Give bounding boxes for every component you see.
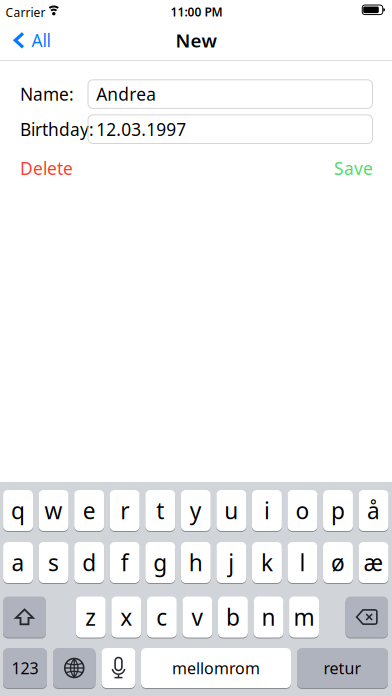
- button[interactable]: q: [3, 489, 33, 531]
- staticText: Delete: [20, 157, 73, 180]
- staticText: Andrea: [96, 83, 156, 106]
- button[interactable]: r: [110, 489, 140, 531]
- button[interactable]: s: [39, 541, 68, 583]
- button[interactable]: d: [74, 541, 104, 583]
- staticText: p: [331, 495, 345, 525]
- button[interactable]: Save: [273, 155, 373, 181]
- button[interactable]: j: [216, 541, 246, 583]
- staticText: h: [189, 547, 203, 577]
- staticText: v: [191, 602, 203, 632]
- button[interactable]: a: [3, 541, 33, 583]
- button[interactable]: f: [110, 541, 140, 583]
- button[interactable]: w: [39, 489, 68, 531]
- button[interactable]: Delete: [345, 596, 388, 638]
- button[interactable]: mellomrom: [141, 647, 291, 688]
- button[interactable]: Delete: [20, 155, 120, 181]
- staticText: m: [293, 602, 314, 632]
- staticText: q: [11, 495, 25, 525]
- staticText: b: [226, 602, 240, 632]
- button[interactable]: k: [252, 541, 282, 583]
- staticText: 11:00 PM: [170, 4, 222, 20]
- button[interactable]: u: [216, 489, 246, 531]
- staticText: 12.03.1997: [96, 118, 186, 141]
- staticText: æ: [364, 547, 384, 577]
- staticText: a: [12, 547, 25, 577]
- button[interactable]: i: [252, 489, 282, 531]
- staticText: z: [85, 602, 96, 632]
- staticText: All: [31, 29, 50, 52]
- staticText: Carrier: [5, 4, 45, 20]
- staticText: k: [261, 547, 273, 577]
- button[interactable]: ø: [323, 541, 353, 583]
- button[interactable]: z: [76, 596, 106, 638]
- staticText: c: [156, 602, 167, 632]
- staticText: ø: [331, 547, 345, 577]
- button[interactable]: h: [181, 541, 211, 583]
- button[interactable]: 123: [3, 647, 47, 688]
- staticText: w: [45, 495, 63, 525]
- staticText: y: [190, 495, 202, 525]
- button[interactable]: v: [182, 596, 212, 638]
- button[interactable]: Back: [13, 25, 50, 55]
- button[interactable]: b: [218, 596, 248, 638]
- staticText: i: [264, 495, 270, 525]
- button[interactable]: l: [287, 541, 317, 583]
- button[interactable]: g: [145, 541, 175, 583]
- staticText: f: [121, 547, 129, 577]
- staticText: retur: [323, 657, 361, 679]
- button[interactable]: x: [111, 596, 141, 638]
- button[interactable]: t: [145, 489, 175, 531]
- button[interactable]: p: [323, 489, 353, 531]
- button[interactable]: c: [147, 596, 177, 638]
- button[interactable]: m: [289, 596, 319, 638]
- staticText: t: [156, 495, 164, 525]
- staticText: Name:: [20, 83, 74, 106]
- button[interactable]: Next keyboard: [53, 647, 95, 688]
- staticText: New: [175, 28, 216, 53]
- staticText: l: [299, 547, 305, 577]
- staticText: j: [228, 547, 234, 577]
- staticText: Save: [334, 157, 373, 180]
- staticText: Birthday:: [20, 118, 94, 141]
- button[interactable]: y: [181, 489, 211, 531]
- button[interactable]: o: [287, 489, 317, 531]
- button[interactable]: Andrea: [88, 80, 372, 108]
- button[interactable]: e: [74, 489, 104, 531]
- button[interactable]: Shift: [3, 596, 46, 638]
- button[interactable]: Dictate: [101, 647, 135, 688]
- staticText: u: [224, 495, 238, 525]
- button[interactable]: retur: [297, 647, 388, 688]
- staticText: d: [82, 547, 96, 577]
- staticText: s: [48, 547, 59, 577]
- button[interactable]: æ: [359, 541, 388, 583]
- staticText: n: [261, 602, 275, 632]
- staticText: å: [367, 495, 380, 525]
- staticText: o: [295, 495, 309, 525]
- staticText: r: [120, 495, 129, 525]
- button[interactable]: 12.03.1997: [88, 115, 372, 143]
- staticText: e: [83, 495, 96, 525]
- button[interactable]: å: [359, 489, 388, 531]
- staticText: mellomrom: [172, 657, 260, 679]
- staticText: g: [153, 547, 167, 577]
- staticText: 123: [11, 657, 38, 679]
- button[interactable]: n: [254, 596, 283, 638]
- staticText: x: [120, 602, 132, 632]
